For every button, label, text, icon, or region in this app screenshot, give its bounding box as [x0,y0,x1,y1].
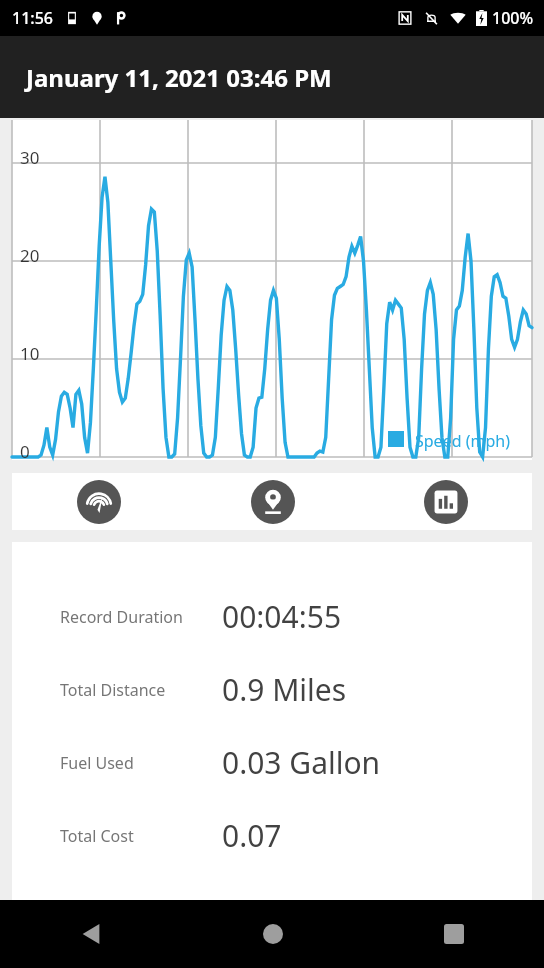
staticText: Total Distance [60,679,166,701]
button[interactable]: Fuel Used [12,726,532,799]
button[interactable]: Statistics chart [424,480,468,524]
staticText: 0 [20,440,30,460]
button[interactable]: Map location [251,480,295,524]
staticText: Speed (mph) [415,430,510,452]
staticText: 0.07 [222,815,282,856]
staticText: 0.9 Miles [222,669,347,710]
button[interactable]: Total Distance [12,653,532,726]
staticText: 20 [20,244,40,267]
staticText: 30 [20,146,40,169]
staticText: 0.03 Gallon [222,742,381,783]
staticText: 11:56 [12,7,53,29]
staticText: 00:04:55 [222,596,342,637]
staticText: Fuel Used [60,752,134,774]
staticText: Record Duration [60,606,183,628]
button[interactable]: Home [249,910,297,958]
button[interactable]: Speed [77,480,121,524]
button[interactable]: Total Cost [12,799,532,872]
staticText: January 11, 2021 03:46 PM [26,61,332,94]
button[interactable]: Back [67,910,115,958]
staticText: Total Cost [60,825,134,847]
button[interactable]: Record Duration [12,580,532,653]
button[interactable]: Recents [430,910,478,958]
staticText: 100% [492,7,534,29]
staticText: 10 [20,342,40,365]
